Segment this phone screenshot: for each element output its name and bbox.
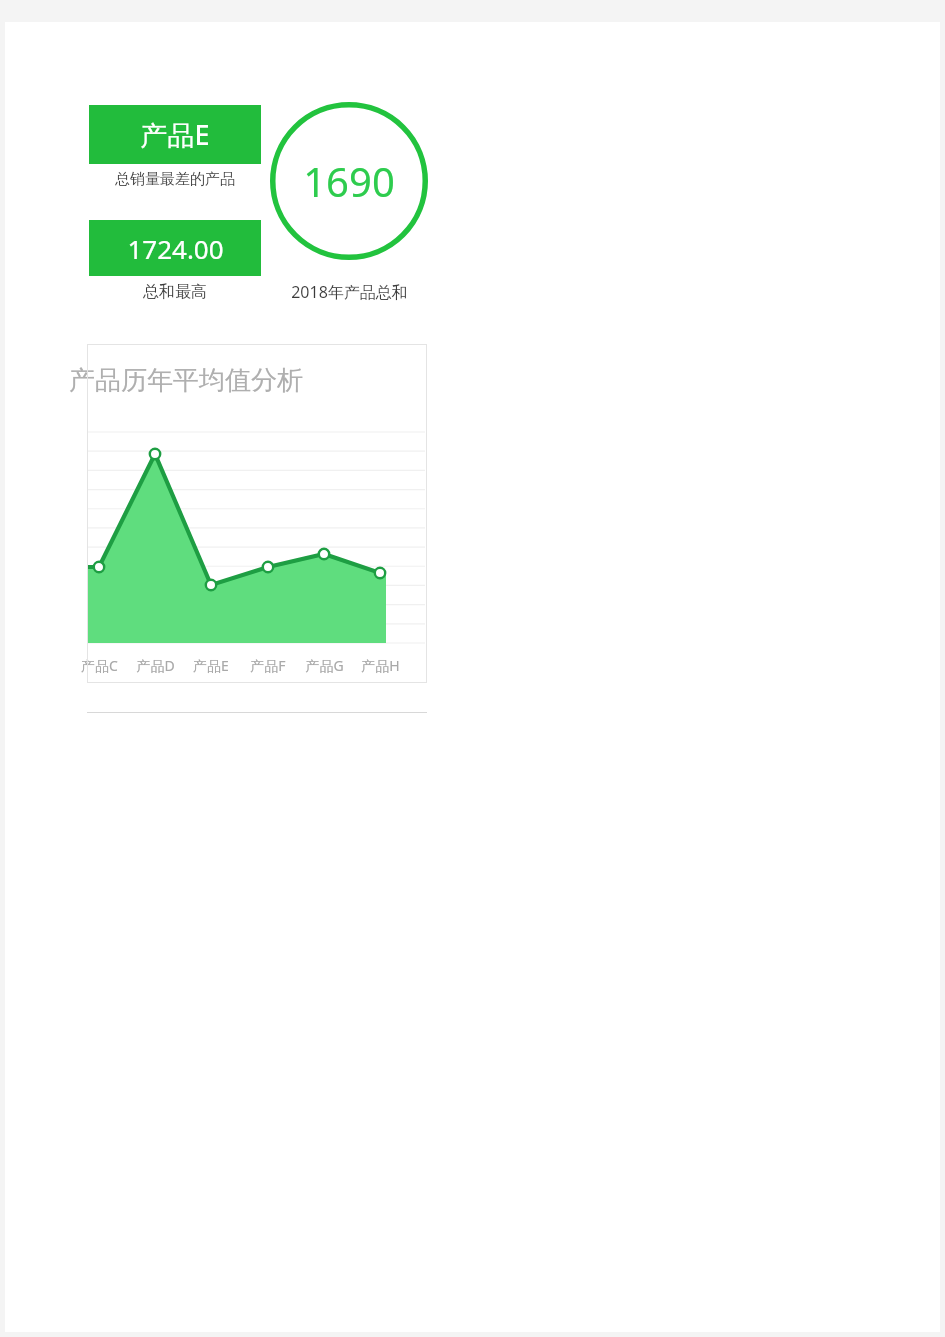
- staticText: 产品G: [305, 656, 344, 675]
- staticText: 总销量最差的产品: [115, 170, 235, 189]
- staticText: 1690: [303, 154, 395, 208]
- staticText: 产品H: [361, 656, 400, 675]
- button[interactable]: 产品历年平均值分析: [87, 344, 427, 683]
- staticText: 产品C: [81, 656, 118, 675]
- staticText: 2018年产品总和: [291, 281, 408, 303]
- staticText: 产品E: [193, 656, 229, 675]
- staticText: 产品F: [250, 656, 286, 675]
- button[interactable]: 产品E: [89, 105, 261, 164]
- button[interactable]: 1724.00: [89, 220, 261, 276]
- staticText: 总和最高: [143, 282, 207, 302]
- staticText: 产品D: [136, 656, 175, 675]
- staticText: 产品E: [140, 116, 210, 153]
- staticText: 产品历年平均值分析: [69, 364, 303, 397]
- staticText: 1724.00: [127, 231, 224, 266]
- button[interactable]: 2018年产品总和 1690: [270, 102, 428, 260]
